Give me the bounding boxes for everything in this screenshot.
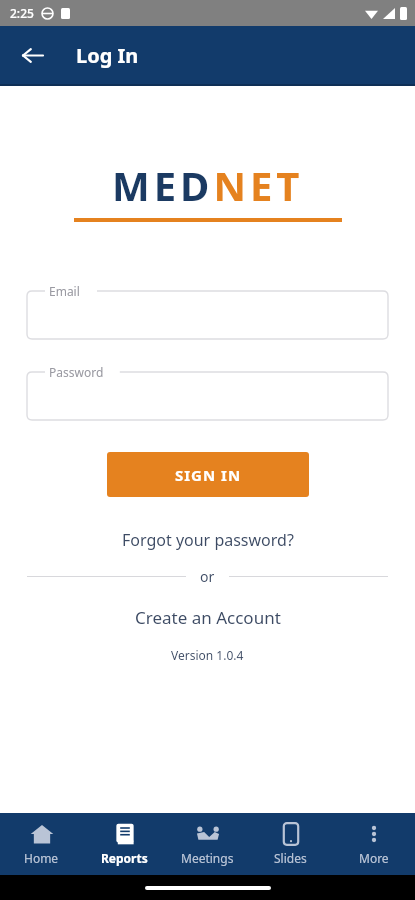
staticText: or: [200, 567, 215, 586]
button[interactable]: More: [332, 813, 415, 875]
staticText: Home: [24, 850, 59, 866]
staticText: Meetings: [181, 850, 234, 866]
staticText: 2:25: [10, 5, 34, 21]
staticText: Log In: [76, 42, 139, 69]
staticText: More: [359, 850, 389, 866]
button[interactable]: Reports: [83, 813, 166, 875]
button[interactable]: Back: [10, 33, 54, 77]
button[interactable]: Slides: [249, 813, 332, 875]
staticText: MEDNET: [112, 158, 304, 212]
button[interactable]: SIGN IN: [107, 452, 309, 497]
button[interactable]: Forgot your password?: [110, 523, 306, 557]
button[interactable]: Create an Account: [123, 600, 293, 635]
staticText: Version 1.0.4: [171, 647, 244, 663]
staticText: Reports: [101, 850, 148, 866]
staticText: Email: [49, 283, 80, 299]
button[interactable]: Meetings: [166, 813, 249, 875]
staticText: Password: [49, 364, 104, 380]
staticText: Slides: [274, 850, 307, 866]
button[interactable]: Home: [0, 813, 83, 875]
staticText: SIGN IN: [175, 465, 242, 485]
